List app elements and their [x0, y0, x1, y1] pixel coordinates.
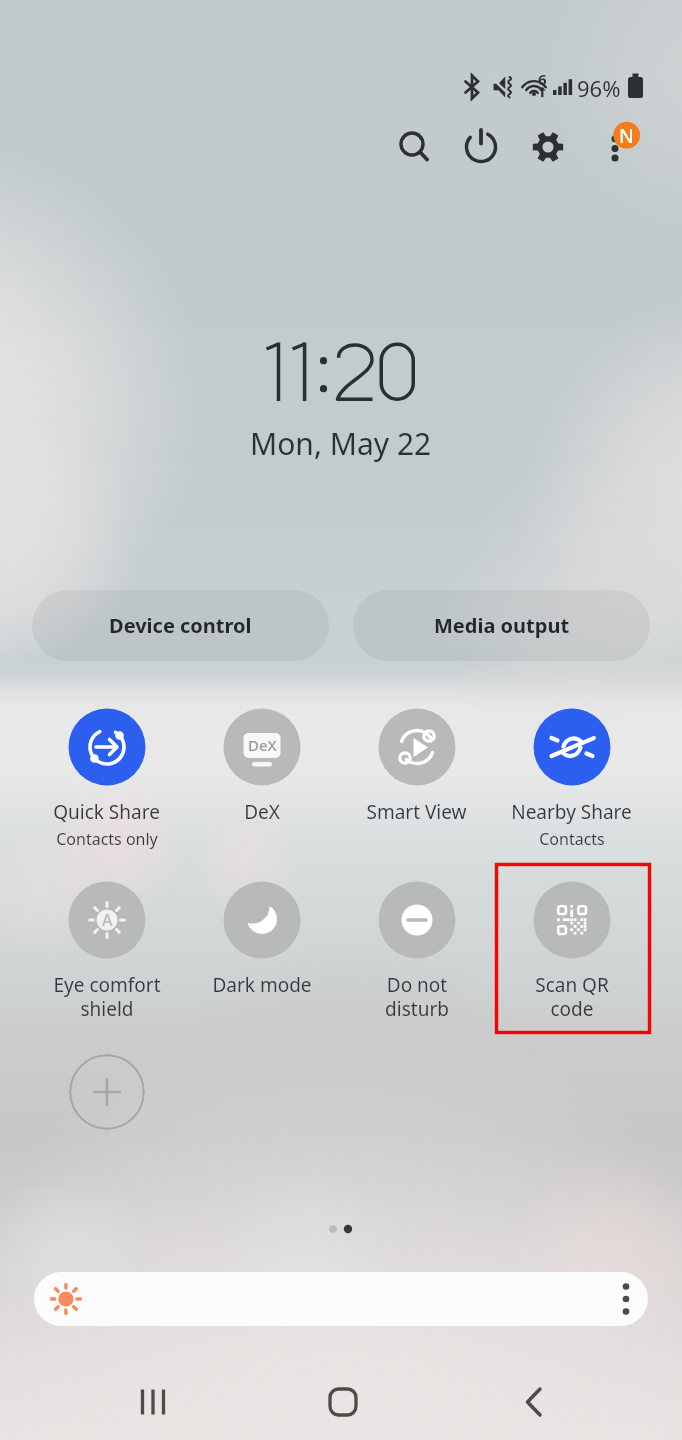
button[interactable]: Settings: [526, 125, 570, 169]
staticText: Dark mode: [212, 972, 312, 998]
button[interactable]: Eye comfort shield: [29, 878, 184, 1038]
button[interactable]: Scan QR code: [494, 878, 649, 1038]
staticText: A: [102, 909, 113, 931]
staticText: Quick Share: [53, 799, 160, 825]
button[interactable]: Smart View: [339, 705, 494, 865]
staticText: Do not disturb: [385, 972, 449, 1021]
staticText: Eye comfort shield: [53, 972, 161, 1021]
button[interactable]: Recents: [114, 1370, 190, 1434]
staticText: 96%: [577, 73, 621, 103]
button[interactable]: Home: [305, 1370, 381, 1434]
staticText: Scan QR code: [535, 972, 609, 1021]
button[interactable]: Quick Share: [29, 705, 184, 865]
button[interactable]: More options: [603, 112, 649, 172]
button[interactable]: Search: [391, 123, 435, 167]
staticText: DeX: [244, 799, 280, 825]
staticText: Contacts only: [56, 828, 158, 850]
button[interactable]: Device control: [32, 590, 329, 661]
staticText: Media output: [434, 612, 570, 639]
staticText: Contacts: [539, 828, 605, 850]
staticText: 6: [538, 69, 547, 89]
staticText: Smart View: [366, 799, 467, 825]
button[interactable]: Nearby Share: [494, 705, 649, 865]
staticText: N: [619, 123, 634, 149]
staticText: DeX: [248, 735, 277, 755]
button[interactable]: Add tile: [69, 1054, 145, 1130]
button[interactable]: [34, 1272, 648, 1326]
button[interactable]: DeX: [184, 705, 339, 865]
staticText: Mon, May 22: [250, 423, 432, 464]
button[interactable]: Do not disturb: [339, 878, 494, 1038]
staticText: Device control: [109, 612, 252, 639]
button[interactable]: Back: [496, 1370, 572, 1434]
button[interactable]: Dark mode: [184, 878, 339, 1038]
staticText: Nearby Share: [511, 799, 632, 825]
button[interactable]: Power: [459, 125, 503, 169]
button[interactable]: Media output: [353, 590, 650, 661]
